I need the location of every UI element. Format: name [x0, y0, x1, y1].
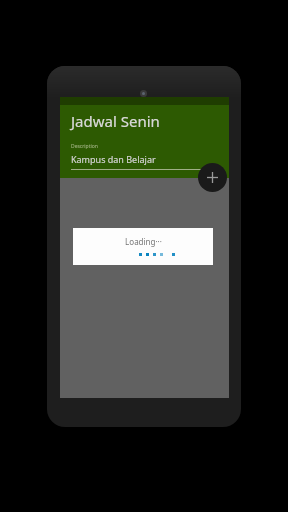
button[interactable]: Loading···: [73, 228, 213, 265]
staticText: Loading···: [125, 236, 162, 247]
staticText: Description: [71, 143, 98, 150]
staticText: Kampus dan Belajar: [71, 153, 156, 165]
staticText: Jadwal Senin: [71, 111, 160, 131]
button[interactable]: Add: [198, 163, 227, 192]
